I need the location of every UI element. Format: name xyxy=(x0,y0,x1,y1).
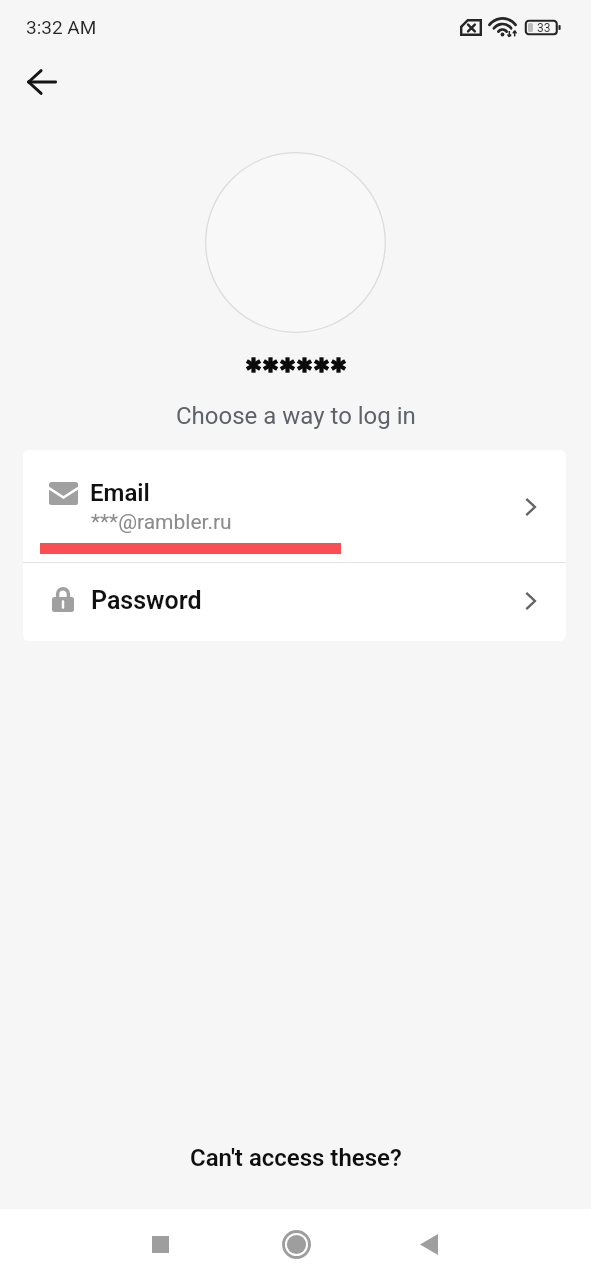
button[interactable]: Can't access these? xyxy=(0,1128,591,1188)
button[interactable]: Back xyxy=(13,53,71,111)
staticText: Choose a way to log in xyxy=(176,402,416,430)
button[interactable]: Back xyxy=(393,1209,465,1280)
staticText: Can't access these? xyxy=(190,1144,402,1172)
button[interactable]: Recent apps xyxy=(124,1209,196,1280)
button[interactable]: Password xyxy=(23,563,566,641)
staticText: 33 xyxy=(537,21,551,35)
staticText: Email xyxy=(90,479,150,507)
staticText: 3:32 AM xyxy=(26,16,97,38)
button[interactable]: Home xyxy=(260,1209,332,1280)
staticText: ***@rambler.ru xyxy=(91,510,232,535)
staticText: Password xyxy=(91,586,202,615)
button[interactable]: Email xyxy=(23,450,566,562)
